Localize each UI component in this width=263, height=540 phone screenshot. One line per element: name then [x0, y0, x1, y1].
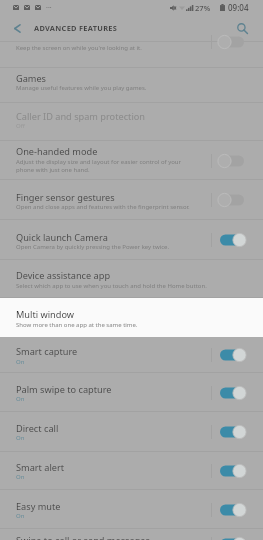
- staticText: Adjust the display size and layout for e…: [16, 158, 212, 174]
- staticText: On: [16, 395, 212, 403]
- button[interactable]: Games: [0, 68, 263, 103]
- button[interactable]: One-handed mode: [0, 141, 263, 180]
- button[interactable]: Device assistance app: [0, 259, 263, 298]
- button[interactable]: Direct call: [0, 412, 263, 452]
- staticText: Multi window: [16, 308, 74, 321]
- staticText: ADVANCED FEATURES: [34, 23, 118, 33]
- staticText: On: [16, 512, 212, 520]
- staticText: Games: [16, 72, 47, 85]
- button[interactable]: Smart capture: [0, 337, 263, 373]
- staticText: 27%: [195, 3, 211, 13]
- button[interactable]: Caller ID and spam protection: [0, 102, 263, 141]
- button[interactable]: Navigate up: [0, 14, 34, 42]
- button[interactable]: Multi window: [0, 298, 263, 337]
- staticText: On: [16, 434, 212, 442]
- staticText: Swipe to call or send messages: [16, 534, 150, 540]
- staticText: Smart capture: [16, 345, 78, 358]
- staticText: Palm swipe to capture: [16, 383, 112, 396]
- button[interactable]: Easy mute: [0, 490, 263, 529]
- staticText: Finger sensor gestures: [16, 191, 115, 204]
- staticText: Device assistance app: [16, 269, 111, 282]
- staticText: Manage useful features while you play ga…: [16, 84, 212, 92]
- staticText: One-handed mode: [16, 145, 98, 158]
- staticText: ...: [46, 1, 52, 11]
- staticText: Quick launch Camera: [16, 231, 108, 244]
- button[interactable]: Quick launch Camera: [0, 220, 263, 260]
- staticText: Caller ID and spam protection: [16, 110, 145, 123]
- button[interactable]: Palm swipe to capture: [0, 373, 263, 412]
- staticText: Direct call: [16, 422, 59, 435]
- staticText: 09:04: [228, 2, 249, 13]
- staticText: On: [16, 358, 212, 366]
- staticText: Open Camera by quickly pressing the Powe…: [16, 243, 212, 251]
- staticText: On: [16, 473, 212, 481]
- staticText: Select which app to use when you touch a…: [16, 282, 212, 290]
- staticText: Easy mute: [16, 500, 61, 513]
- staticText: Open and close apps and features with th…: [16, 203, 212, 211]
- button[interactable]: Smart alert: [0, 451, 263, 490]
- staticText: Show more than one app at the same time.: [16, 321, 138, 329]
- staticText: Keep the screen on while you're looking …: [16, 44, 142, 52]
- button[interactable]: Finger sensor gestures: [0, 180, 263, 220]
- button[interactable]: Keep the screen on while you're looking …: [0, 42, 263, 68]
- button[interactable]: Swipe to call or send messages: [0, 529, 263, 540]
- button[interactable]: Search: [228, 14, 256, 42]
- staticText: Smart alert: [16, 461, 65, 474]
